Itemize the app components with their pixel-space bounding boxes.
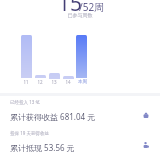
staticText: 累计抵现 53.56 元 [10, 142, 75, 153]
button[interactable]: 已经投入 13 笔 [0, 99, 160, 122]
other: 收益详情 [140, 109, 152, 121]
staticText: 11 [23, 79, 29, 85]
staticText: 15 [58, 0, 83, 18]
staticText: 13 [51, 79, 57, 85]
other: 抵现详情 [140, 139, 152, 151]
staticText: /52周 [79, 0, 105, 14]
staticText: 已经投入 13 笔 [10, 99, 40, 105]
staticText: 已参与周数 [0, 12, 160, 18]
staticText: 投保 19 天获得收益 [10, 130, 49, 136]
button[interactable]: 投保 19 天获得收益 [0, 130, 160, 153]
staticText: 14 [65, 79, 71, 85]
staticText: 累计获得收益 681.04 元 [10, 111, 96, 122]
staticText: 本周 [78, 79, 87, 85]
staticText: 12 [37, 79, 43, 85]
